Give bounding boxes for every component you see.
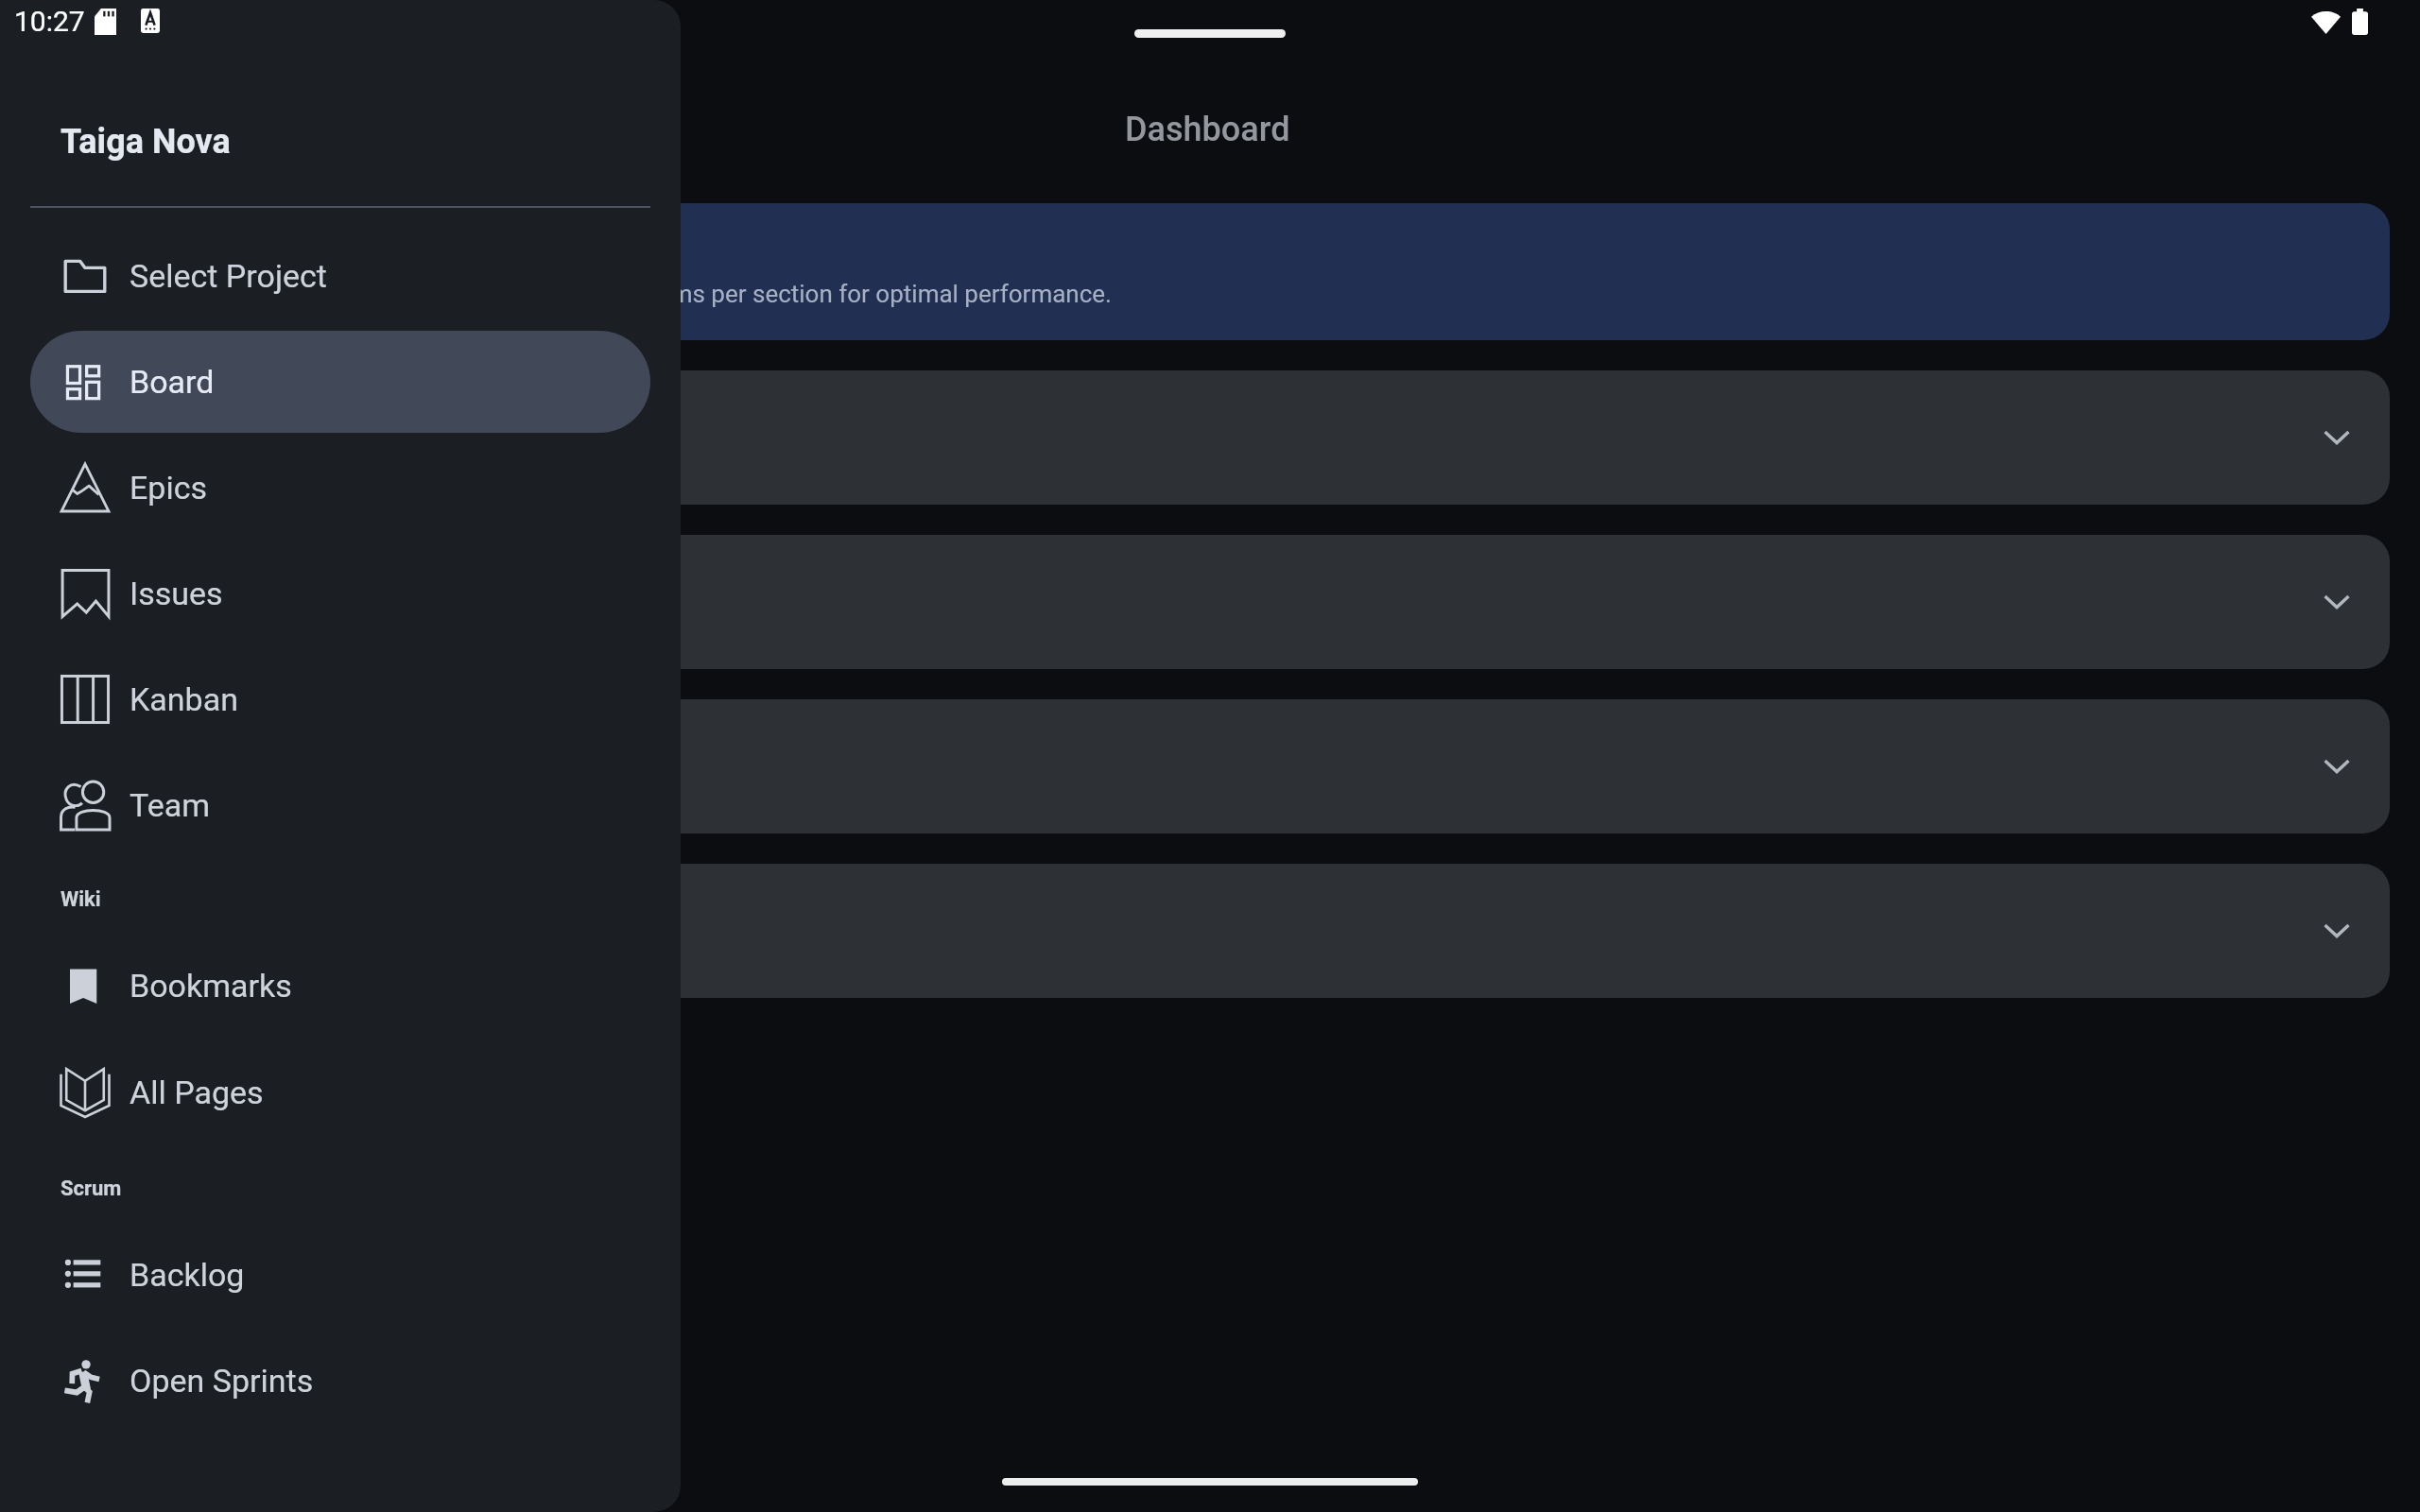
button[interactable]: All Pages <box>30 1041 650 1143</box>
button[interactable]: Board <box>30 331 650 433</box>
staticText: Issues <box>130 575 223 612</box>
button[interactable]: Blocked Items <box>30 864 2390 998</box>
staticText: Dashboard <box>1125 110 1290 149</box>
other: Battery <box>2352 9 2368 35</box>
button[interactable]: Epics <box>30 437 650 539</box>
button[interactable]: Team <box>30 754 650 856</box>
button[interactable]: Bookmarks <box>30 935 650 1037</box>
button[interactable]: Expand <box>2310 411 2363 464</box>
button[interactable]: Select Project <box>30 225 650 327</box>
button[interactable]: Workflow tip <box>30 203 2390 340</box>
staticText: Sprint Velocity <box>72 419 281 456</box>
button[interactable]: Backlog <box>30 1224 650 1326</box>
staticText: Select Project <box>130 257 327 295</box>
button[interactable]: Expand <box>2310 904 2363 957</box>
staticText: Open Sprints <box>130 1362 314 1400</box>
button[interactable]: Active Stories <box>30 535 2390 669</box>
staticText: Backlog <box>130 1256 245 1294</box>
staticText: 10:27 <box>14 5 85 38</box>
staticText: Active Stories <box>72 583 271 621</box>
other: Wi-Fi <box>2311 9 2341 34</box>
staticText: Kanban <box>130 680 238 718</box>
staticText: Team <box>130 786 210 824</box>
staticText: Scrum <box>60 1177 122 1201</box>
staticText: Board <box>130 363 215 401</box>
button[interactable]: Expand <box>2310 740 2363 793</box>
other: Keyboard language <box>141 9 160 33</box>
staticText: Taiga Nova <box>60 122 231 162</box>
button[interactable]: Expand <box>2310 576 2363 628</box>
button[interactable]: Sprint Velocity <box>30 370 2390 505</box>
other: SD card <box>95 9 116 35</box>
button[interactable]: Review Queue <box>30 699 2390 833</box>
staticText: Review Queue <box>72 747 275 785</box>
staticText: Wiki <box>60 887 101 912</box>
staticText: All Pages <box>130 1074 264 1111</box>
button[interactable]: Kanban <box>30 648 650 750</box>
button[interactable]: Issues <box>30 542 650 644</box>
staticText: Bookmarks <box>130 967 292 1005</box>
staticText: Limit work-in-progress items per section… <box>394 280 1112 308</box>
button[interactable]: Open Sprints <box>30 1330 650 1432</box>
staticText: Epics <box>130 469 208 507</box>
